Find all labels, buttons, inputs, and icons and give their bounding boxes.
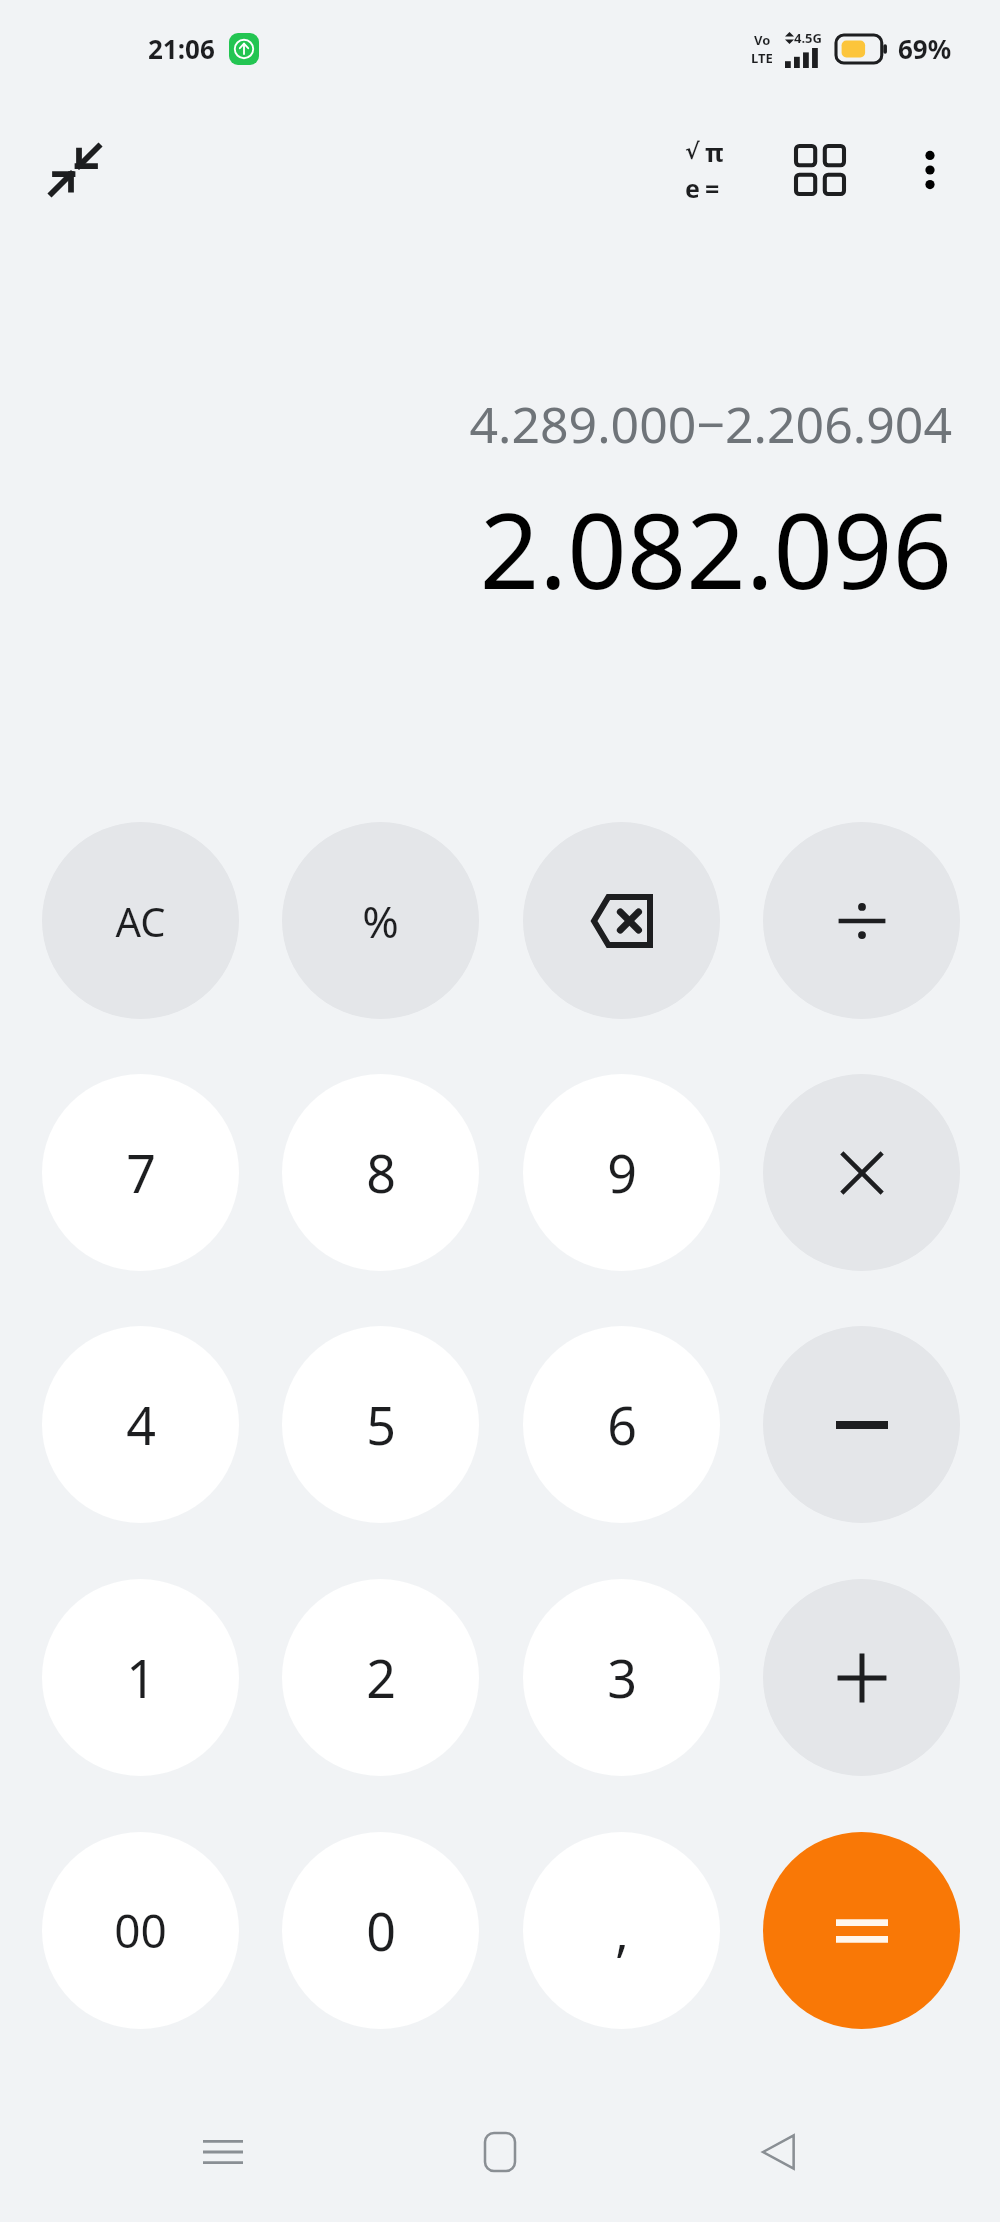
button[interactable]: Divide: [763, 822, 960, 1019]
button[interactable]: Scientific mode: [656, 122, 752, 218]
button[interactable]: AC: [42, 822, 239, 1019]
button[interactable]: More options: [882, 122, 978, 218]
staticText: 0: [366, 1895, 396, 1966]
button[interactable]: 8: [282, 1074, 479, 1271]
button[interactable]: 5: [282, 1326, 479, 1523]
button[interactable]: 4: [42, 1326, 239, 1523]
staticText: 6: [607, 1389, 637, 1460]
staticText: 1: [126, 1642, 156, 1713]
button[interactable]: %: [282, 822, 479, 1019]
button[interactable]: 9: [523, 1074, 720, 1271]
staticText: 69%: [898, 31, 952, 66]
button[interactable]: Recent apps: [168, 2097, 278, 2207]
staticText: Vo: [754, 31, 771, 49]
button[interactable]: Multiply: [763, 1074, 960, 1271]
staticText: 4.289.000−2.206.904: [469, 390, 952, 458]
staticText: =: [705, 171, 720, 205]
staticText: ,: [615, 1895, 629, 1966]
staticText: 00: [114, 1899, 167, 1962]
staticText: LTE: [751, 49, 773, 67]
button[interactable]: History: [772, 122, 868, 218]
staticText: 21:06: [148, 31, 215, 66]
staticText: e: [685, 171, 700, 205]
button[interactable]: Back: [723, 2097, 833, 2207]
button[interactable]: 0: [282, 1832, 479, 2029]
button[interactable]: Add: [763, 1579, 960, 1776]
button[interactable]: 7: [42, 1074, 239, 1271]
staticText: 5: [366, 1389, 396, 1460]
button[interactable]: Subtract: [763, 1326, 960, 1523]
staticText: %: [362, 891, 399, 951]
staticText: 2.082.096: [479, 478, 952, 620]
button[interactable]: 2: [282, 1579, 479, 1776]
staticText: √: [685, 139, 700, 165]
staticText: 9: [607, 1137, 637, 1208]
button[interactable]: Equals: [763, 1832, 960, 2029]
staticText: 4: [126, 1389, 156, 1460]
button[interactable]: Collapse: [26, 122, 124, 218]
staticText: 2: [366, 1642, 396, 1713]
button[interactable]: ,: [523, 1832, 720, 2029]
staticText: AC: [115, 894, 166, 948]
button[interactable]: 1: [42, 1579, 239, 1776]
staticText: 7: [126, 1137, 156, 1208]
staticText: 3: [607, 1642, 637, 1713]
button[interactable]: 6: [523, 1326, 720, 1523]
staticText: 8: [366, 1137, 396, 1208]
staticText: π: [705, 135, 724, 169]
button[interactable]: Backspace: [523, 822, 720, 1019]
button[interactable]: Home: [445, 2097, 555, 2207]
button[interactable]: 3: [523, 1579, 720, 1776]
staticText: 4.5G: [794, 29, 822, 47]
button[interactable]: 00: [42, 1832, 239, 2029]
